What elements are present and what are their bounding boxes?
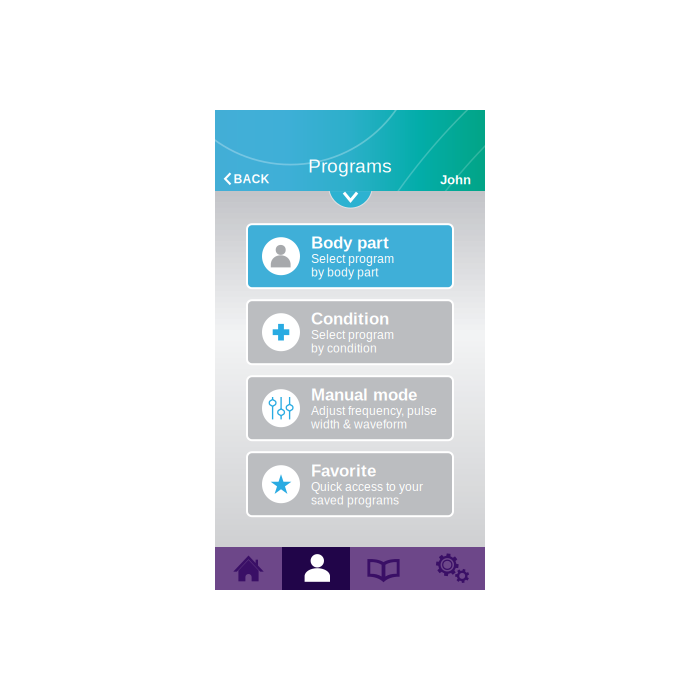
button[interactable]: Home [215, 547, 282, 590]
staticText: Select program [311, 252, 394, 266]
staticText: Favorite [311, 461, 376, 480]
staticText: saved programs [311, 494, 399, 507]
staticText: BACK [233, 172, 269, 186]
staticText: Quick access to your [311, 480, 423, 494]
button[interactable]: John [423, 169, 471, 191]
staticText: Programs [308, 155, 392, 177]
staticText: Body part [311, 233, 389, 252]
staticText: by condition [311, 342, 377, 355]
button[interactable]: Favorite [246, 451, 454, 517]
button[interactable]: Body part [246, 223, 454, 289]
staticText: Condition [311, 309, 389, 328]
staticText: John [440, 173, 471, 187]
button[interactable]: Library [349, 548, 417, 591]
button[interactable]: Settings [419, 548, 486, 591]
staticText: Adjust frequency, pulse [311, 404, 437, 418]
staticText: Manual mode [311, 385, 417, 404]
staticText: Select program [311, 328, 394, 342]
button[interactable]: BACK [215, 169, 273, 191]
button[interactable]: Condition [246, 299, 454, 365]
button[interactable]: Manual mode [246, 375, 454, 441]
staticText: by body part [311, 266, 378, 279]
staticText: width & waveform [311, 418, 407, 431]
button[interactable]: Profile [283, 546, 351, 589]
